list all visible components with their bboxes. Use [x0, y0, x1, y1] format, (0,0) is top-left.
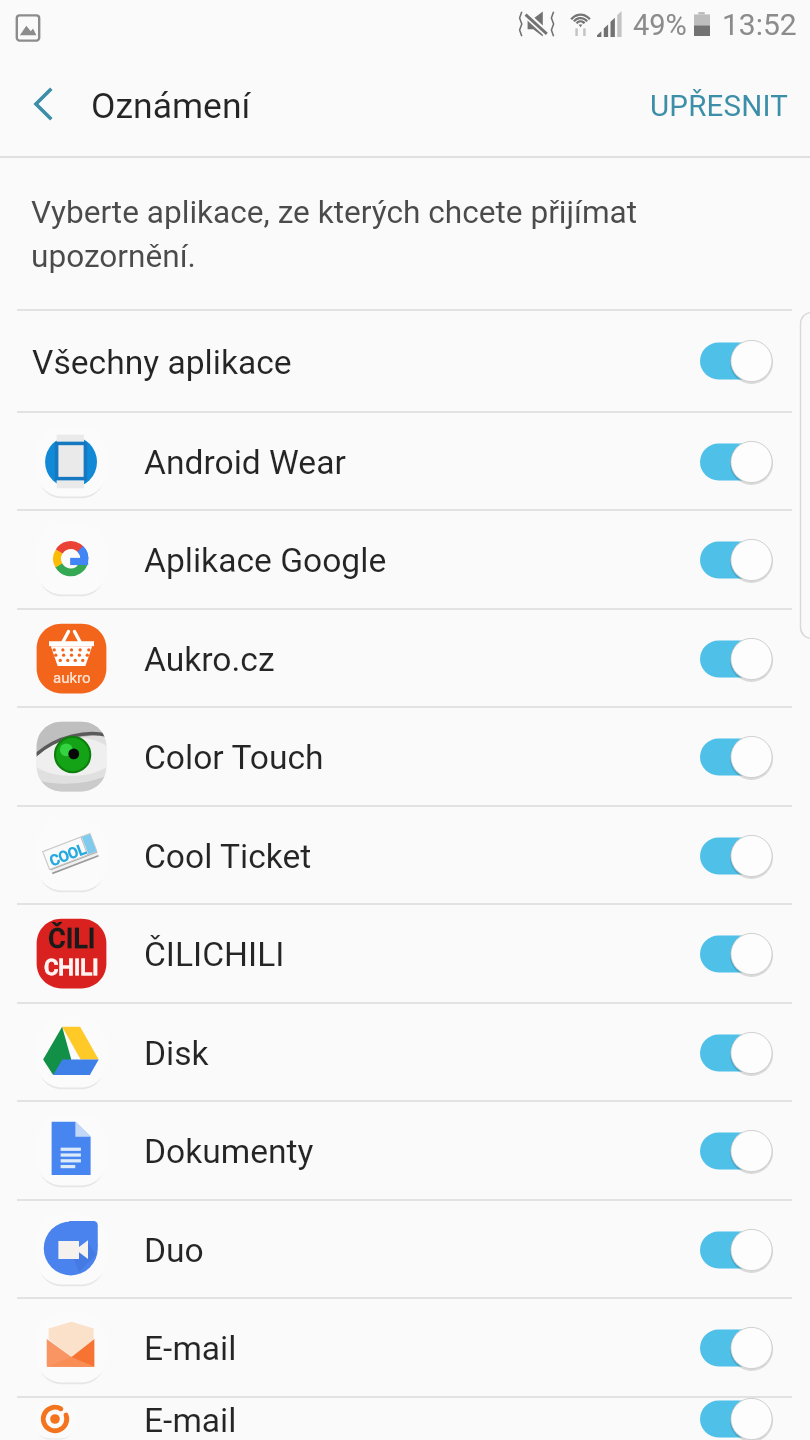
staticText: Vyberte aplikace, ze kterých chcete přij…	[31, 194, 638, 275]
staticText: Disk	[144, 1034, 209, 1073]
button[interactable]: ČILI	[0, 905, 810, 1002]
staticText: Aplikace Google	[144, 541, 387, 580]
button[interactable]: UPŘESNIT	[626, 56, 810, 156]
staticText: ČILICHILI	[144, 935, 285, 974]
staticText: Všechny aplikace	[32, 343, 292, 382]
staticText: COOL	[47, 840, 89, 870]
staticText: Aukro.cz	[144, 640, 275, 679]
staticText: ČILI	[48, 923, 96, 955]
staticText: CHILI	[44, 955, 99, 981]
button[interactable]: Android Wear	[0, 413, 810, 510]
button[interactable]: Color Touch	[0, 708, 810, 805]
staticText: aukro	[53, 669, 91, 687]
button[interactable]: Disk	[0, 1004, 810, 1101]
staticText: Android Wear	[144, 443, 346, 482]
staticText: E-mail	[144, 1401, 237, 1440]
button[interactable]: E-mail	[0, 1398, 810, 1440]
button[interactable]: Back	[0, 56, 90, 156]
button[interactable]: aukro	[0, 610, 810, 707]
staticText: Duo	[144, 1231, 204, 1270]
staticText: Oznámení	[91, 85, 251, 127]
staticText: E-mail	[144, 1329, 237, 1368]
button[interactable]: Všechny aplikace	[0, 311, 810, 411]
button[interactable]: Dokumenty	[0, 1102, 810, 1199]
button[interactable]: Aplikace Google	[0, 511, 810, 608]
button[interactable]: E-mail	[0, 1299, 810, 1396]
staticText: Dokumenty	[144, 1132, 314, 1171]
staticText: 13:52	[722, 7, 797, 42]
staticText: UPŘESNIT	[650, 89, 789, 124]
button[interactable]: Duo	[0, 1201, 810, 1298]
button[interactable]: COOL	[0, 807, 810, 904]
staticText: 49%	[633, 8, 687, 42]
staticText: Color Touch	[144, 738, 324, 777]
staticText: Cool Ticket	[144, 837, 312, 876]
